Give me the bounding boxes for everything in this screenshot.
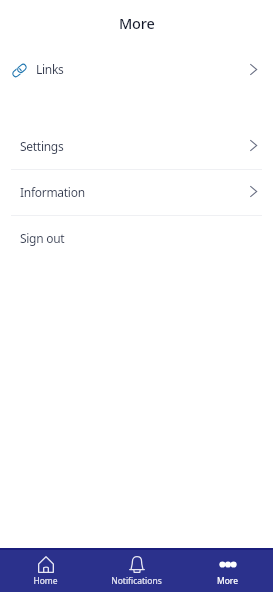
- button[interactable]: Links: [0, 46, 273, 91]
- other: Open: [249, 63, 258, 76]
- staticText: Notifications: [111, 575, 162, 587]
- button[interactable]: Settings: [0, 123, 273, 168]
- other: Links: [11, 62, 28, 79]
- staticText: Settings: [20, 138, 64, 154]
- staticText: Home: [33, 575, 58, 587]
- staticText: More: [217, 575, 238, 587]
- button[interactable]: Home: [0, 548, 91, 592]
- other: Open: [249, 185, 258, 198]
- button[interactable]: More: [182, 548, 273, 592]
- staticText: Links: [36, 61, 64, 77]
- staticText: Sign out: [20, 230, 65, 246]
- button[interactable]: Sign out: [0, 215, 273, 260]
- staticText: Information: [20, 184, 85, 200]
- staticText: More: [119, 13, 155, 33]
- button[interactable]: Information: [0, 169, 273, 214]
- button[interactable]: Notifications: [91, 548, 182, 592]
- other: Open: [249, 139, 258, 152]
